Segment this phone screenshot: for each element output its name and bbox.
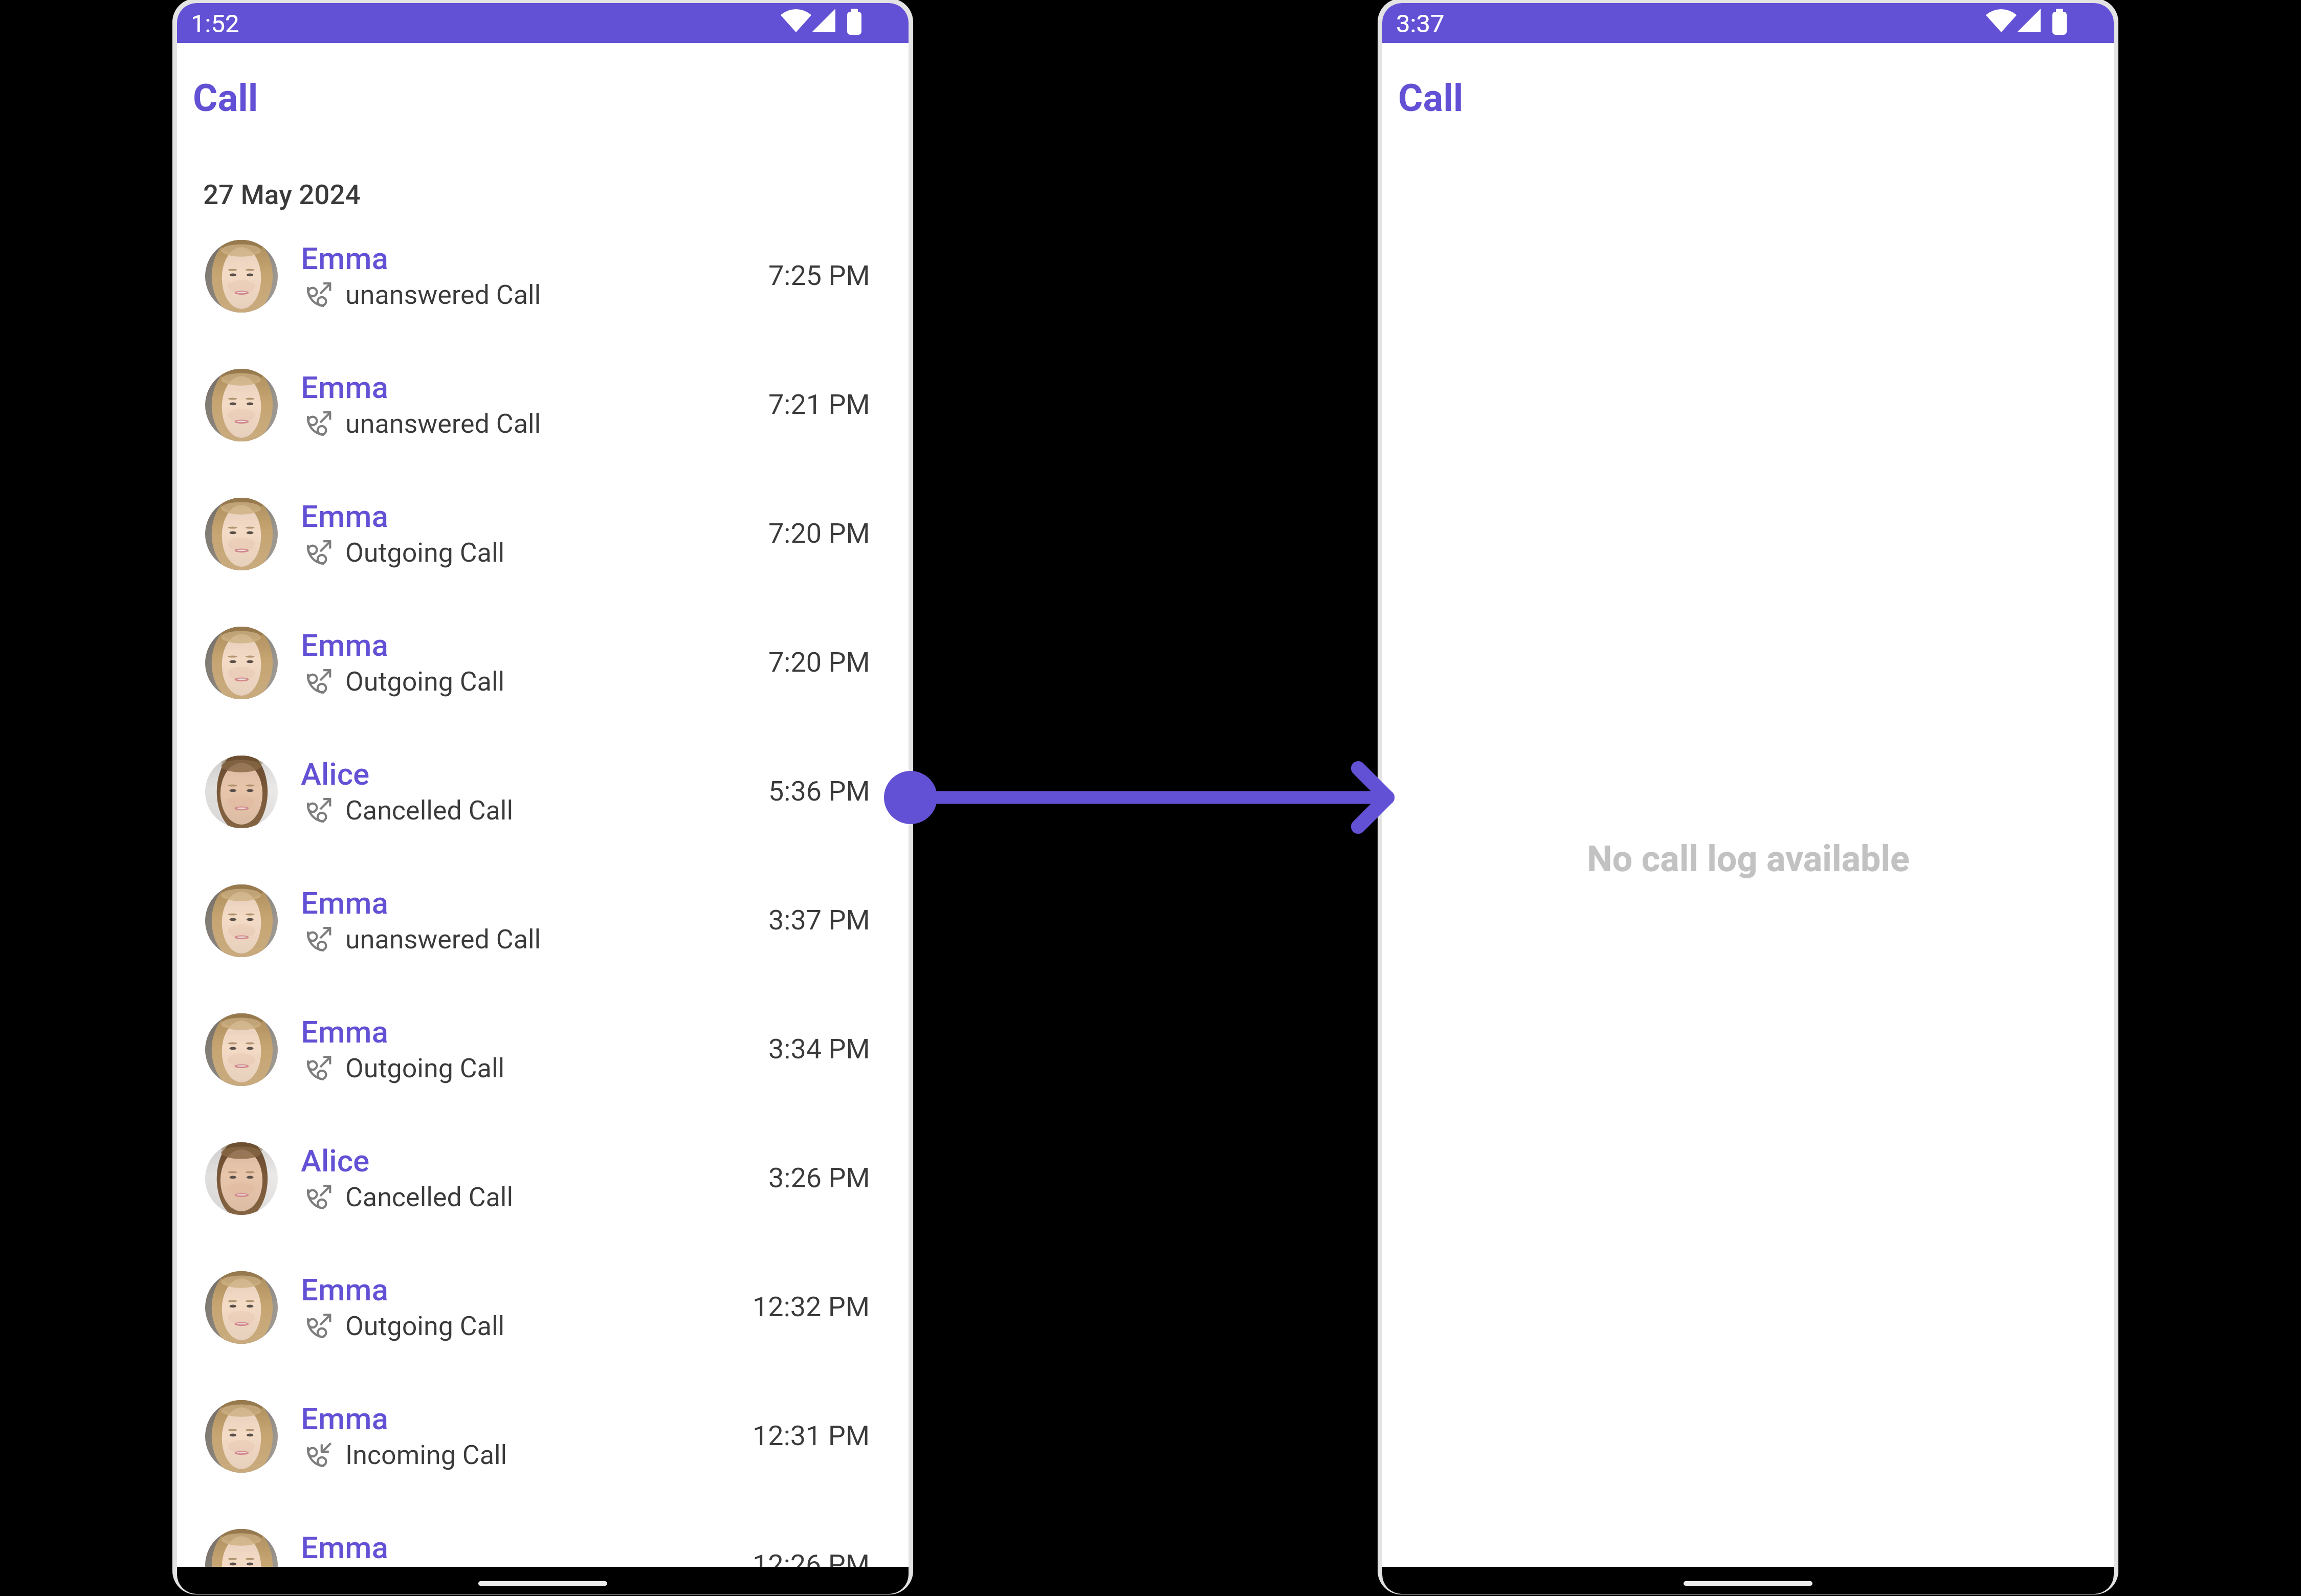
staticText: Outgoing Call	[345, 1311, 505, 1342]
staticText: Cancelled Call	[345, 1182, 514, 1213]
button[interactable]: Contact photo of Alice	[177, 1117, 909, 1246]
staticText: Emma	[301, 627, 388, 663]
button[interactable]: Contact photo of Emma	[177, 344, 909, 473]
staticText: Alice	[301, 1143, 370, 1179]
staticText: unanswered Call	[345, 408, 541, 439]
other: Contact photo of Emma	[205, 369, 278, 441]
button[interactable]: Contact photo of Alice	[177, 730, 909, 859]
staticText: Outgoing Call	[345, 666, 505, 697]
staticText: 3:34 PM	[768, 1033, 870, 1065]
other: Outgoing Call	[306, 1311, 335, 1339]
other: Contact photo of Alice	[205, 756, 278, 828]
other: Cancelled Call	[306, 1182, 335, 1210]
other: Cancelled Call	[306, 795, 335, 824]
staticText: 7:21 PM	[768, 388, 870, 420]
other: Contact photo of Emma	[205, 1529, 278, 1594]
staticText: 7:20 PM	[768, 517, 870, 549]
staticText: Emma	[301, 240, 388, 276]
other: Contact photo of Emma	[205, 1013, 278, 1086]
button[interactable]: Contact photo of Emma	[177, 473, 909, 602]
other: Outgoing Call	[306, 666, 335, 695]
button[interactable]: Contact photo of Emma	[177, 988, 909, 1117]
staticText: Emma	[301, 1272, 388, 1307]
staticText: No call log available	[1587, 838, 1910, 880]
staticText: Outgoing Call	[345, 1568, 505, 1594]
staticText: 3:26 PM	[768, 1162, 870, 1194]
staticText: unanswered Call	[345, 924, 541, 955]
other: Wi-Fi, mobile signal and battery status	[1987, 6, 2069, 35]
other: Contact photo of Emma	[205, 884, 278, 957]
button[interactable]: Contact photo of Emma	[177, 1504, 909, 1594]
staticText: Call	[193, 76, 258, 120]
staticText: 5:36 PM	[768, 775, 870, 807]
staticText: 3:37	[1396, 9, 1445, 38]
other: unanswered Call	[306, 924, 335, 952]
button[interactable]: Home gesture bar	[1684, 1581, 1812, 1586]
staticText: Emma	[301, 885, 388, 921]
other: Contact photo of Emma	[205, 1400, 278, 1473]
button[interactable]: Home gesture bar	[478, 1581, 607, 1586]
other: Contact photo of Emma	[205, 240, 278, 313]
staticText: Emma	[301, 1401, 388, 1436]
staticText: 1:52	[191, 9, 239, 38]
staticText: Call	[1398, 76, 1464, 120]
staticText: 7:20 PM	[768, 646, 870, 678]
other: unanswered Call	[306, 408, 335, 437]
button[interactable]: Contact photo of Emma	[177, 215, 909, 344]
staticText: Emma	[301, 1014, 388, 1050]
other: Outgoing Call	[306, 537, 335, 566]
other: unanswered Call	[306, 279, 335, 308]
other: Incoming Call	[306, 1439, 335, 1468]
button[interactable]: Contact photo of Emma	[177, 602, 909, 730]
staticText: Emma	[301, 1529, 388, 1565]
other: Outgoing Call	[306, 1053, 335, 1081]
staticText: Outgoing Call	[345, 537, 505, 568]
staticText: unanswered Call	[345, 279, 541, 311]
staticText: Alice	[301, 756, 370, 792]
other: Contact photo of Alice	[205, 1142, 278, 1215]
staticText: Cancelled Call	[345, 795, 514, 826]
other: Contact photo of Emma	[205, 498, 278, 570]
staticText: 12:26 PM	[753, 1548, 870, 1581]
other: Wi-Fi, mobile signal and battery status	[782, 6, 864, 35]
staticText: 27 May 2024	[203, 179, 361, 211]
staticText: Emma	[301, 369, 388, 405]
button[interactable]: Contact photo of Emma	[177, 859, 909, 988]
staticText: Incoming Call	[345, 1439, 507, 1471]
staticText: 12:31 PM	[753, 1420, 870, 1452]
staticText: Emma	[301, 498, 388, 534]
button[interactable]: Contact photo of Emma	[177, 1246, 909, 1375]
staticText: 12:32 PM	[753, 1291, 870, 1323]
staticText: 7:25 PM	[768, 259, 870, 292]
staticText: Outgoing Call	[345, 1053, 505, 1084]
other: Contact photo of Emma	[205, 1271, 278, 1344]
button[interactable]: Contact photo of Emma	[177, 1375, 909, 1504]
other: Contact photo of Emma	[205, 627, 278, 699]
staticText: 3:37 PM	[768, 904, 870, 936]
